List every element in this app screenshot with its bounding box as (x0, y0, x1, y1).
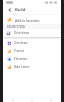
button[interactable]: Overview (3, 39, 61, 47)
staticText: RECENT ITEMS (7, 25, 25, 29)
staticText: Transit (14, 49, 24, 53)
button[interactable]: Back (6, 6, 13, 13)
button[interactable]: Home (29, 97, 35, 102)
button[interactable]: Bike Lanes (3, 63, 61, 71)
staticText: Add to favorites (15, 18, 40, 22)
staticText: Elevation (14, 57, 28, 61)
button[interactable]: Elevation (3, 55, 61, 63)
staticText: Overview (14, 41, 28, 45)
button[interactable]: Recents (48, 97, 54, 102)
staticText: Build (15, 7, 26, 13)
staticText: Bike Lanes (14, 65, 30, 69)
button[interactable]: Back (10, 97, 16, 102)
button[interactable]: Transit (3, 47, 61, 55)
staticText: Directions (14, 31, 30, 35)
button[interactable]: Directions (3, 29, 61, 37)
button[interactable]: Add to favorites (3, 15, 61, 24)
